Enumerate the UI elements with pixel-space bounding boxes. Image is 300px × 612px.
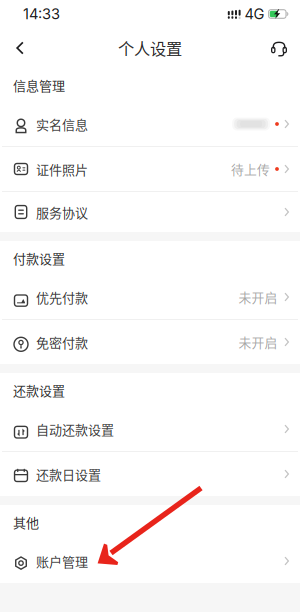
staticText: 付款设置 — [13, 248, 65, 267]
staticText: 服务协议 — [36, 202, 88, 221]
button[interactable]: Customer service — [264, 33, 294, 63]
staticText: 其他 — [13, 512, 39, 531]
staticText: 优先付款 — [36, 287, 88, 306]
staticText: 未开启 — [238, 288, 277, 306]
button[interactable]: 还款日设置 — [0, 452, 300, 496]
button[interactable]: 服务协议 — [0, 192, 300, 232]
staticText: 还款设置 — [13, 380, 65, 399]
staticText: 4G — [245, 5, 265, 23]
button[interactable]: 自动还款设置 — [0, 407, 300, 451]
staticText: 还款日设置 — [36, 464, 101, 483]
staticText: 个人设置 — [118, 36, 182, 60]
staticText: 实名信息 — [36, 114, 88, 133]
button[interactable]: 实名信息 — [0, 102, 300, 146]
staticText: 未开启 — [238, 333, 277, 351]
staticText: 证件照片 — [36, 159, 88, 178]
staticText: 免密付款 — [36, 332, 88, 351]
staticText: 自动还款设置 — [36, 419, 114, 438]
button[interactable]: Back — [6, 33, 34, 63]
button[interactable]: 免密付款 — [0, 320, 300, 364]
button[interactable]: 账户管理 — [0, 539, 300, 583]
staticText: 账户管理 — [36, 551, 88, 570]
button[interactable]: 证件照片 — [0, 147, 300, 191]
staticText: 信息管理 — [13, 75, 65, 94]
staticText: 待上传 — [231, 160, 270, 178]
button[interactable]: 优先付款 — [0, 275, 300, 319]
staticText: 14:33 — [23, 5, 60, 23]
